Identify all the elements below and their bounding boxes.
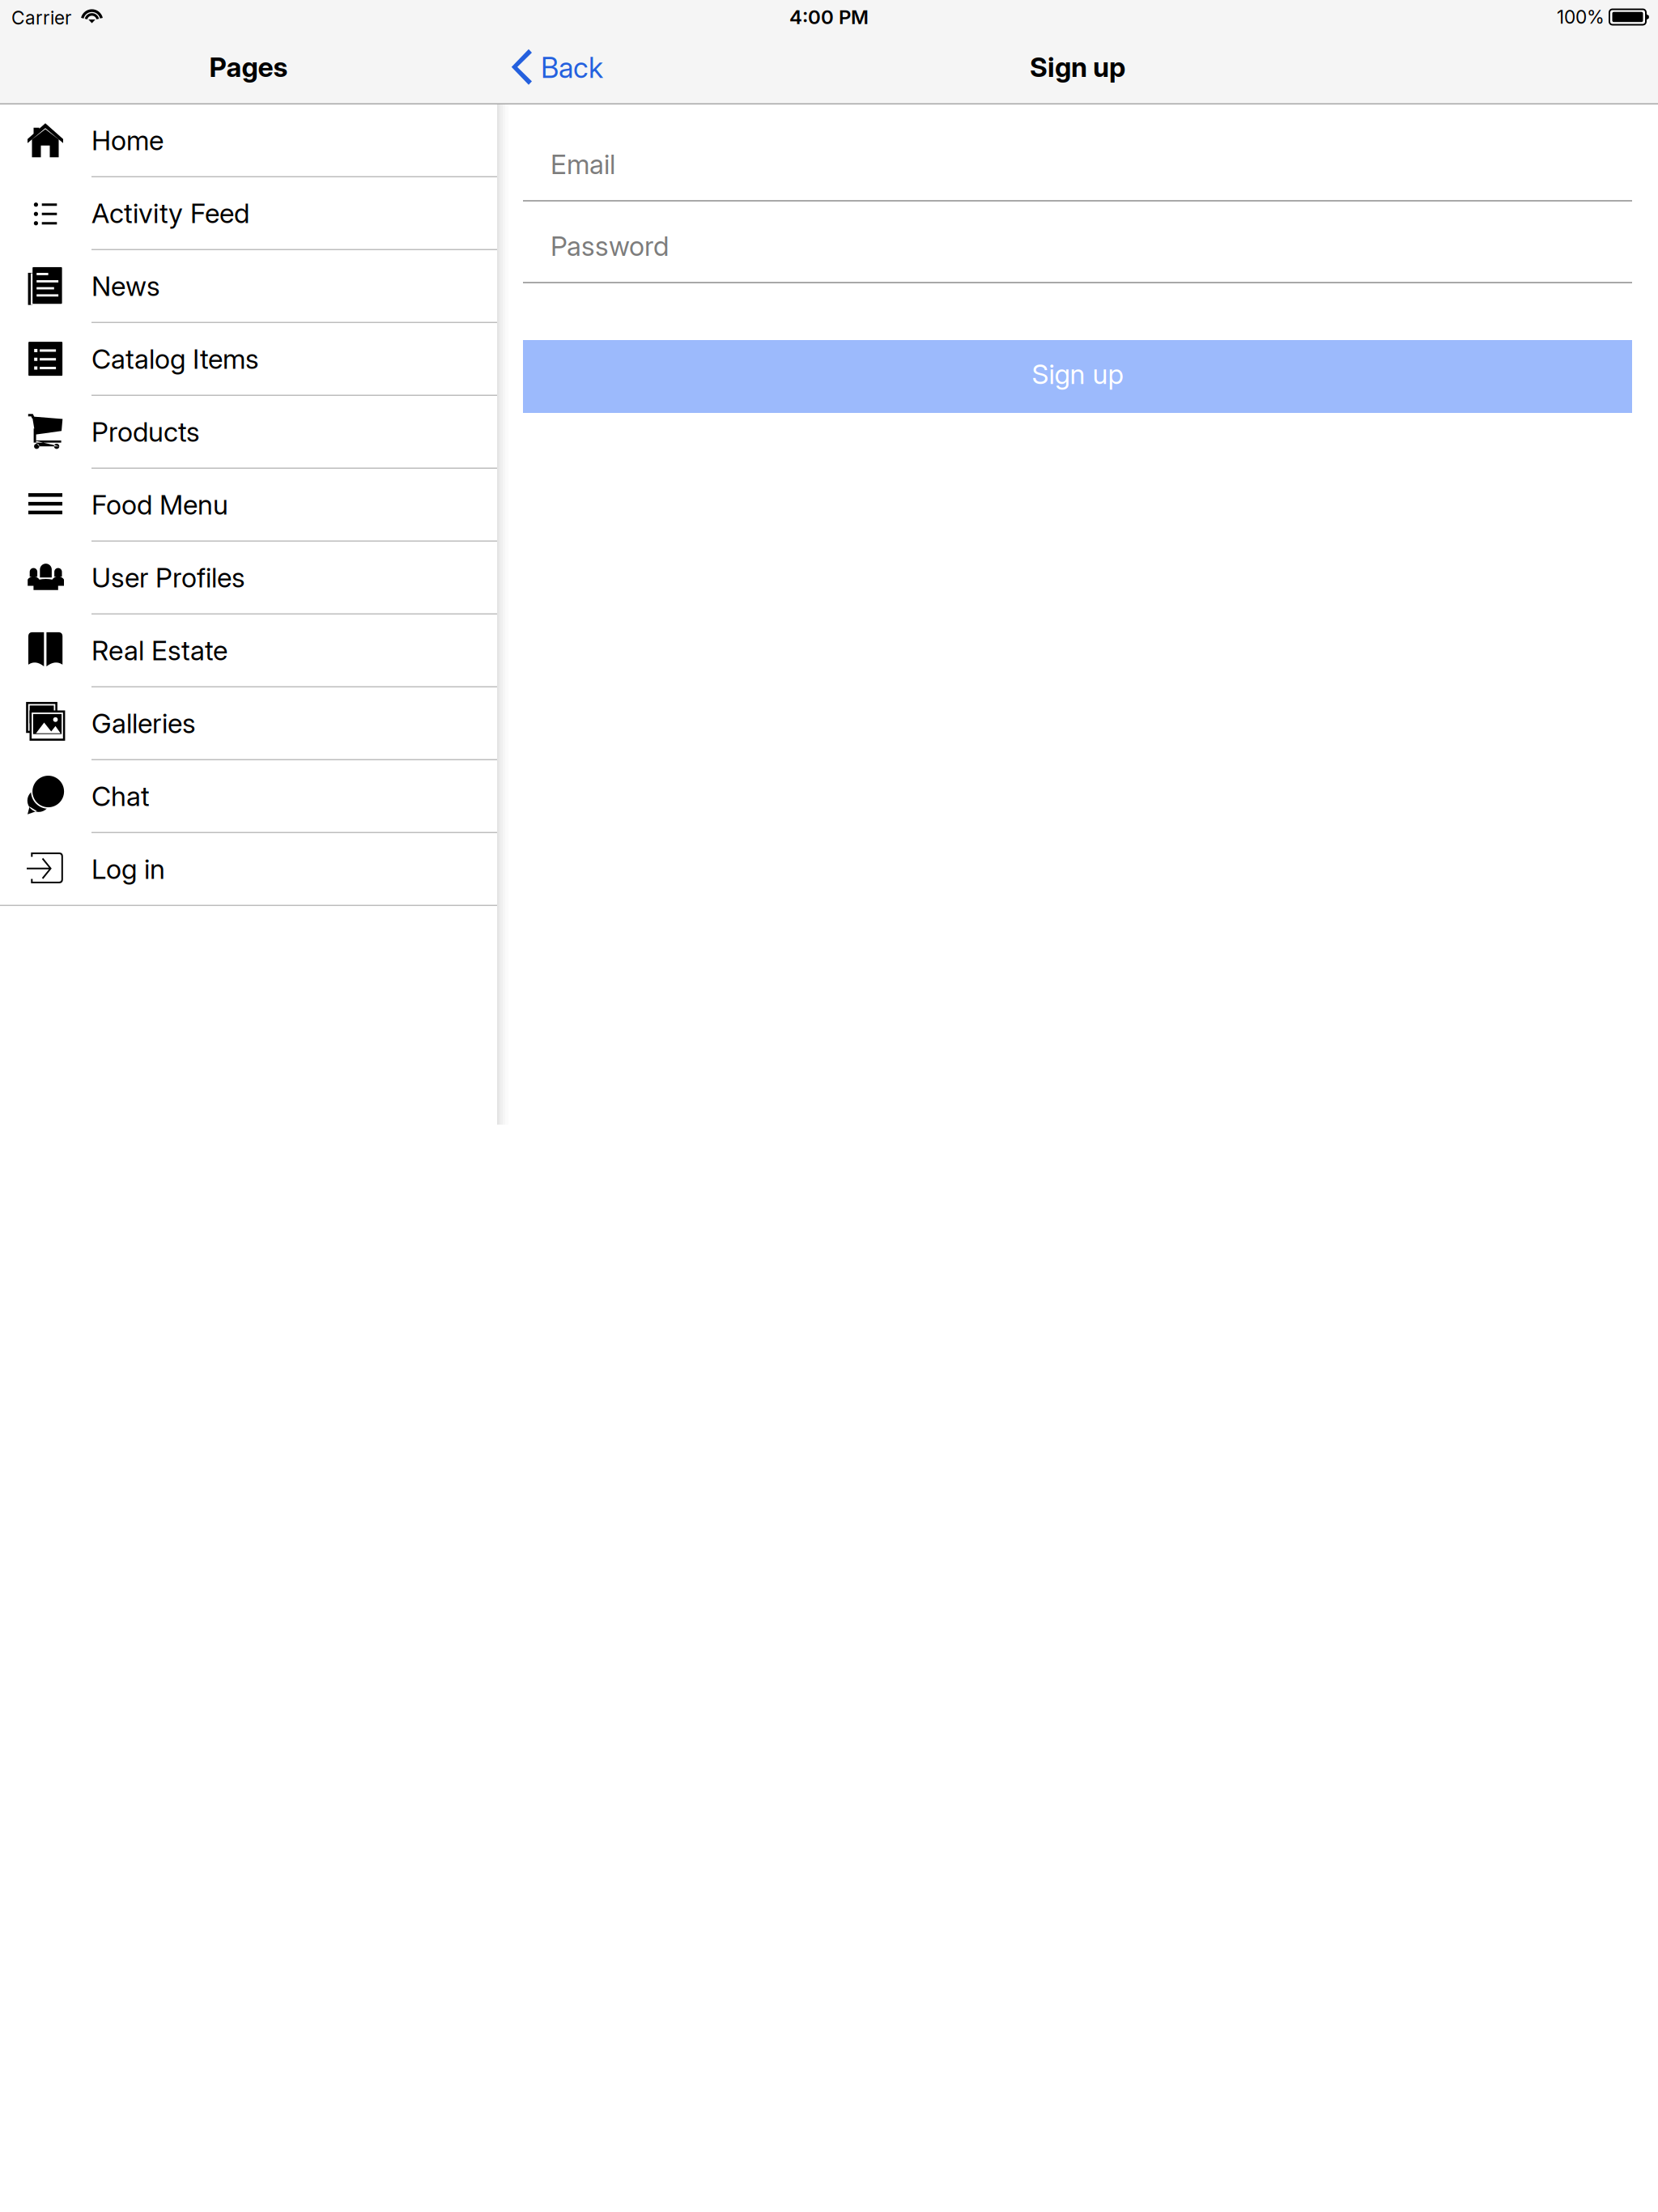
button[interactable]: Activity Feed (0, 177, 497, 250)
button[interactable]: Log in (0, 833, 497, 906)
button[interactable]: Home (0, 104, 497, 177)
staticText: 4:00 PM (789, 5, 869, 29)
staticText: Home (91, 124, 164, 157)
staticText: Log in (91, 853, 165, 885)
staticText: Food Menu (91, 488, 228, 521)
staticText: User Profiles (91, 561, 245, 594)
button[interactable]: Products (0, 396, 497, 469)
staticText: Real Estate (91, 634, 227, 667)
button[interactable]: Back (497, 37, 619, 103)
button[interactable]: Catalog Items (0, 323, 497, 396)
staticText: Carrier (11, 7, 71, 29)
staticText: Activity Feed (91, 197, 249, 229)
staticText: Pages (209, 51, 288, 83)
button[interactable]: Galleries (0, 687, 497, 760)
staticText: Catalog Items (91, 343, 259, 375)
staticText: Sign up (1030, 51, 1125, 83)
staticText: Products (91, 415, 200, 448)
button[interactable]: Food Menu (0, 469, 497, 542)
button[interactable]: User Profiles (0, 542, 497, 615)
staticText: Email (551, 148, 615, 181)
button[interactable]: Chat (0, 760, 497, 833)
button[interactable]: News (0, 250, 497, 323)
staticText: News (91, 270, 160, 302)
staticText: Back (541, 51, 603, 85)
staticText: Password (551, 230, 669, 262)
staticText: Sign up (1032, 358, 1123, 390)
staticText: Chat (91, 780, 150, 812)
button[interactable]: Sign up (523, 340, 1632, 413)
staticText: 100% (1557, 6, 1605, 28)
button[interactable]: Real Estate (0, 615, 497, 687)
staticText: Galleries (91, 707, 196, 740)
